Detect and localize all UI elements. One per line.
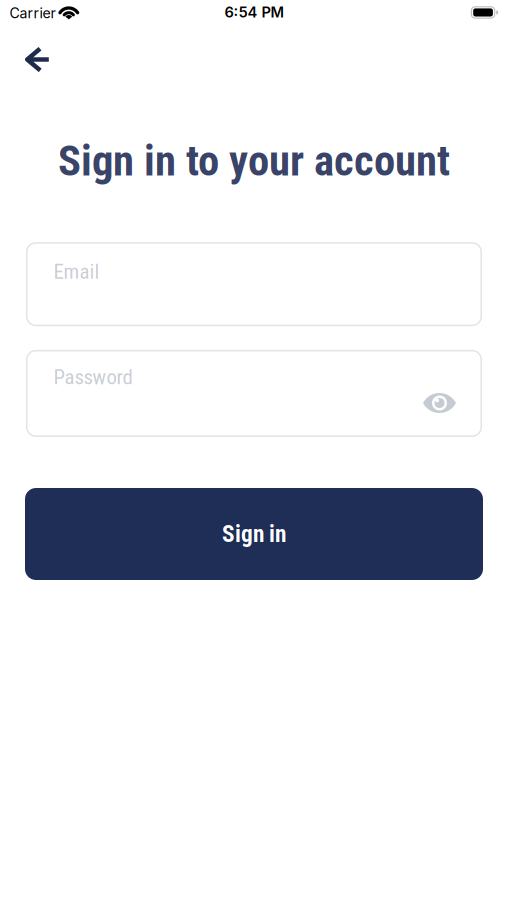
button[interactable]: Sign in — [25, 488, 483, 580]
staticText: 6:54 PM — [224, 3, 284, 21]
staticText: Password — [53, 365, 132, 389]
button[interactable]: Password — [26, 350, 482, 437]
button[interactable]: Back — [16, 37, 60, 81]
button[interactable]: Email — [26, 242, 482, 326]
staticText: Sign in — [222, 520, 286, 548]
staticText: Sign in to your account — [58, 136, 450, 186]
staticText: Email — [53, 259, 99, 284]
staticText: Carrier — [9, 4, 55, 22]
button[interactable]: Show password — [419, 383, 459, 423]
